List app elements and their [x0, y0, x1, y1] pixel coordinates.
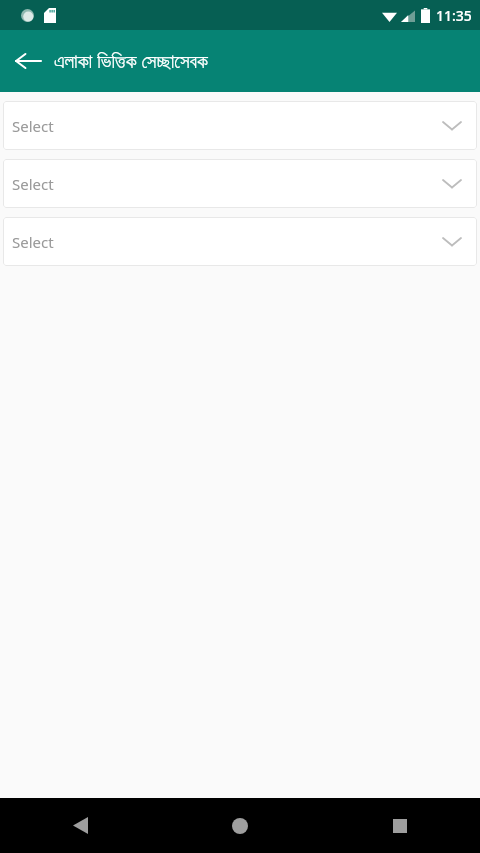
staticText: Select — [12, 116, 54, 136]
staticText: Select — [12, 174, 54, 194]
button[interactable]: Select — [3, 159, 477, 208]
staticText: Select — [12, 232, 54, 252]
button[interactable]: Home — [160, 798, 320, 853]
button[interactable]: Back — [0, 798, 160, 853]
button[interactable]: Select — [3, 217, 477, 266]
button[interactable]: Recent apps — [320, 798, 480, 853]
staticText: 11:35 — [436, 6, 472, 25]
button[interactable]: Back — [8, 41, 48, 81]
staticText: এলাকা ভিত্তিক সেচ্ছাসেবক — [54, 48, 208, 74]
button[interactable]: Select — [3, 101, 477, 150]
